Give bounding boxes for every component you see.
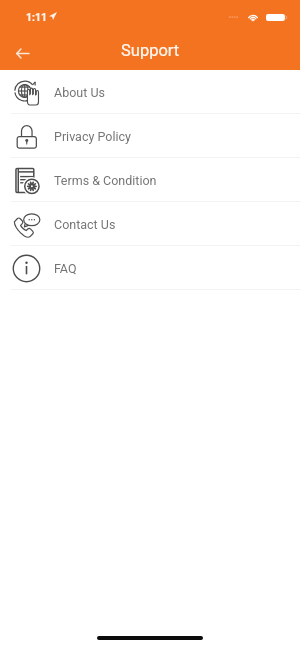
button[interactable]: About Us: [0, 70, 300, 114]
staticText: About Us: [54, 85, 105, 100]
staticText: FAQ: [54, 261, 77, 276]
button[interactable]: Back: [5, 36, 39, 70]
button[interactable]: FAQ: [0, 246, 300, 290]
staticText: Contact Us: [54, 217, 116, 232]
staticText: Terms & Condition: [54, 173, 157, 188]
staticText: Privacy Policy: [54, 129, 131, 144]
button[interactable]: Privacy Policy: [0, 114, 300, 158]
button[interactable]: Contact Us: [0, 202, 300, 246]
button[interactable]: Terms & Condition: [0, 158, 300, 202]
staticText: Support: [121, 41, 180, 60]
staticText: 1:11: [26, 11, 48, 23]
